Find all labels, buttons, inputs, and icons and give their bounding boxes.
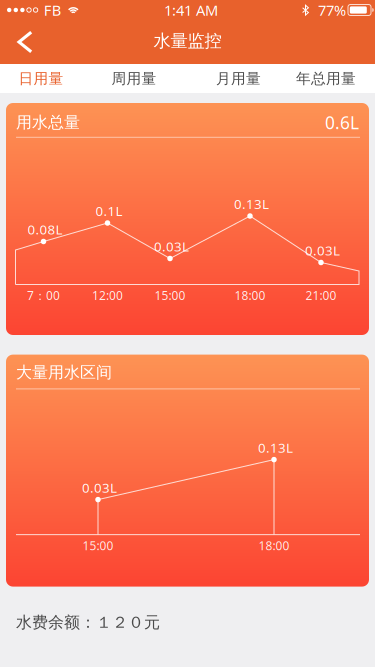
staticText: 大量用水区间 xyxy=(16,363,112,382)
staticText: 18:00 xyxy=(258,538,289,553)
staticText: 12:00 xyxy=(92,287,123,303)
staticText: 0.03L xyxy=(305,241,340,259)
staticText: 0.13L xyxy=(258,439,293,456)
staticText: 0.03L xyxy=(154,237,189,255)
button[interactable]: Back xyxy=(0,19,50,64)
staticText: 0.08L xyxy=(27,220,62,238)
staticText: 15:00 xyxy=(82,538,113,553)
staticText: 0.1L xyxy=(95,202,122,220)
staticText: 月用量 xyxy=(216,69,261,87)
staticText: 0.6L xyxy=(325,111,359,134)
staticText: FB xyxy=(44,0,62,20)
staticText: 水量监控 xyxy=(153,30,221,52)
staticText: 77% xyxy=(318,0,346,20)
button[interactable]: 年总用量 xyxy=(284,64,368,93)
button[interactable]: 日用量 xyxy=(0,64,82,93)
staticText: 0.03L xyxy=(82,479,117,496)
staticText: 0.13L xyxy=(234,195,269,213)
staticText: 18:00 xyxy=(234,287,265,303)
staticText: 日用量 xyxy=(18,69,63,87)
staticText: 15:00 xyxy=(154,287,185,303)
staticText: 1:41 AM xyxy=(164,0,218,20)
staticText: 周用量 xyxy=(111,69,156,87)
staticText: 水费余额：１２０元 xyxy=(16,613,160,632)
staticText: 用水总量 xyxy=(16,113,80,132)
staticText: 年总用量 xyxy=(296,69,356,87)
staticText: 7：00 xyxy=(27,287,60,303)
button[interactable]: 周用量 xyxy=(82,64,186,93)
button[interactable]: 月用量 xyxy=(186,64,291,93)
staticText: 21:00 xyxy=(305,287,336,303)
